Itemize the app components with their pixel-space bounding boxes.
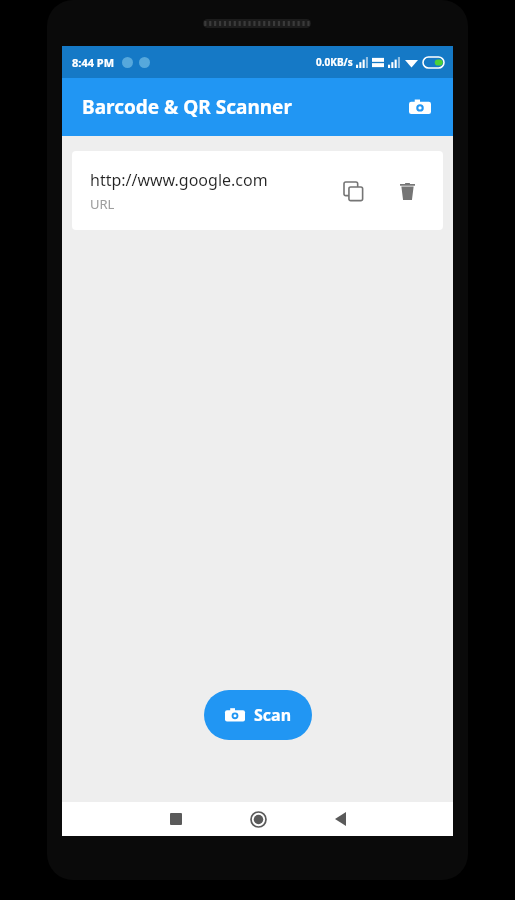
button[interactable]: Home: [240, 802, 276, 836]
button[interactable]: Delete: [387, 171, 427, 211]
button[interactable]: Copy: [333, 171, 373, 211]
staticText: http://www.google.com: [90, 169, 268, 191]
staticText: 0.0KB/s: [316, 55, 353, 69]
staticText: Barcode & QR Scanner: [82, 94, 292, 120]
button[interactable]: Recents: [158, 802, 194, 836]
button[interactable]: Scan: [204, 690, 312, 740]
staticText: URL: [90, 195, 115, 213]
button[interactable]: Back: [322, 802, 358, 836]
button[interactable]: Open camera scanner: [401, 88, 439, 126]
button[interactable]: http://www.google.com: [72, 151, 443, 230]
staticText: 8:44 PM: [72, 55, 115, 70]
staticText: Scan: [254, 704, 292, 726]
